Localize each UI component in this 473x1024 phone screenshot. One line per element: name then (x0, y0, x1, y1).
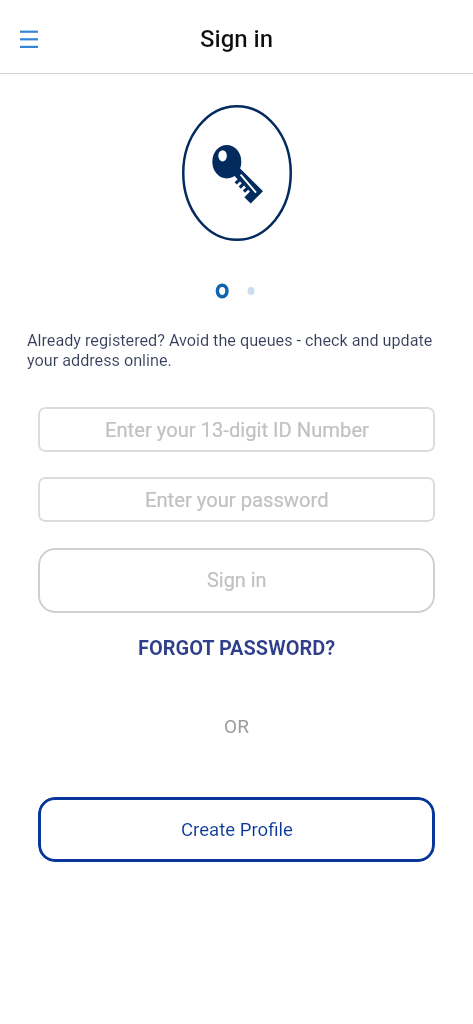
button[interactable]: Open navigation menu (7, 15, 51, 59)
staticText: Sign in (207, 569, 267, 592)
staticText: Already registered? Avoid the queues - c… (27, 331, 451, 370)
staticText: Sign in (200, 25, 274, 53)
staticText: Enter your password (145, 488, 329, 512)
button[interactable]: Enter your password (38, 477, 435, 522)
button[interactable]: Sign in (38, 548, 435, 613)
staticText: Enter your 13-digit ID Number (105, 418, 369, 442)
button[interactable]: FORGOT PASSWORD? (126, 631, 348, 664)
button[interactable]: Create Profile (38, 797, 435, 862)
staticText: OR (0, 715, 473, 737)
staticText: Create Profile (181, 819, 293, 841)
button[interactable]: Enter your 13-digit ID Number (38, 407, 435, 452)
staticText: FORGOT PASSWORD? (138, 636, 336, 659)
